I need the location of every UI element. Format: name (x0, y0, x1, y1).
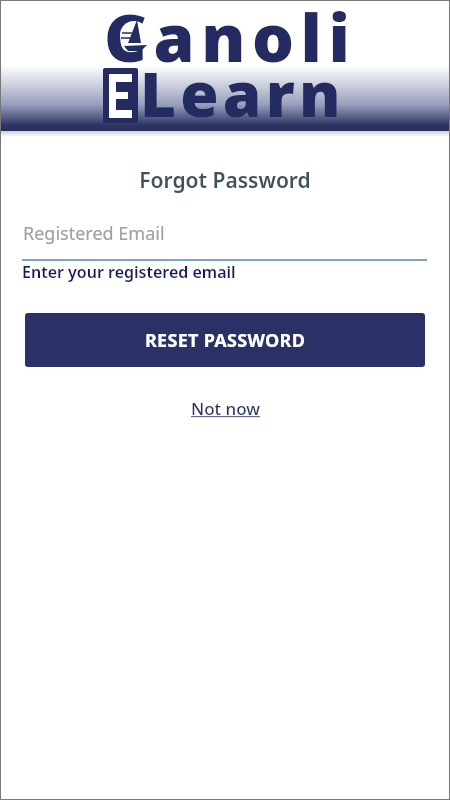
staticText: Registered Email (23, 221, 165, 246)
staticText: Forgot Password (0, 166, 450, 195)
button[interactable] (22, 216, 427, 261)
staticText: Enter your registered email (22, 261, 236, 283)
staticText: Canoli (104, 0, 357, 81)
button[interactable]: Not now (191, 397, 260, 420)
staticText: RESET PASSWORD (145, 328, 306, 353)
button[interactable]: RESET PASSWORD (25, 313, 425, 367)
staticText: Learn (140, 51, 345, 135)
